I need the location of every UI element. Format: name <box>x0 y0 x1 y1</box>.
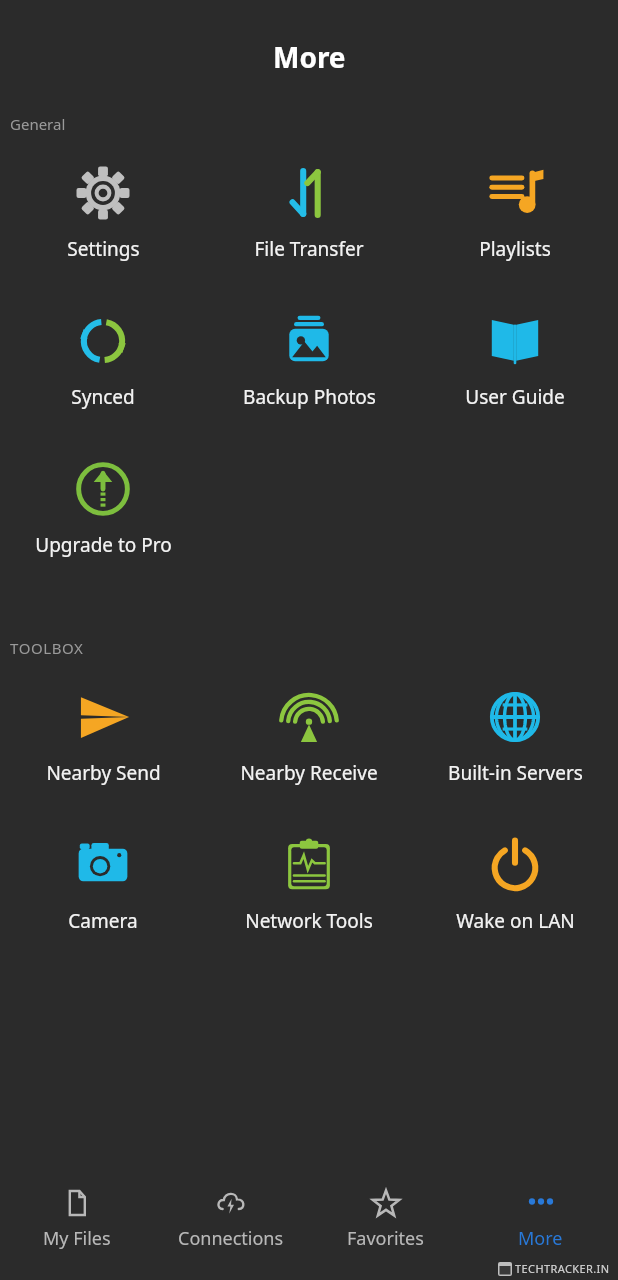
button[interactable]: Network Tools <box>206 828 412 976</box>
staticText: Settings <box>67 236 140 262</box>
button[interactable]: User Guide <box>412 304 618 452</box>
staticText: User Guide <box>465 384 565 410</box>
button[interactable]: More <box>463 1170 618 1280</box>
staticText: Favorites <box>347 1226 424 1251</box>
staticText: Nearby Send <box>46 760 161 786</box>
button[interactable]: Wake on LAN <box>412 828 618 976</box>
staticText: General <box>10 114 66 134</box>
button[interactable]: Backup Photos <box>206 304 412 452</box>
button[interactable]: Synced <box>0 304 206 452</box>
staticText: TECHTRACKER.IN <box>515 1261 610 1276</box>
button[interactable]: Camera <box>0 828 206 976</box>
staticText: More <box>518 1226 563 1251</box>
staticText: TOOLBOX <box>10 638 84 658</box>
staticText: More <box>273 38 346 76</box>
button[interactable]: Upgrade to Pro <box>0 452 206 600</box>
staticText: My Files <box>43 1226 111 1251</box>
button[interactable]: Playlists <box>412 156 618 304</box>
button[interactable]: Nearby Send <box>0 680 206 828</box>
staticText: Built-in Servers <box>448 760 583 786</box>
button[interactable]: Connections <box>154 1170 308 1280</box>
staticText: Camera <box>68 908 138 934</box>
button[interactable]: My Files <box>0 1170 154 1280</box>
staticText: Connections <box>178 1226 284 1251</box>
staticText: Playlists <box>479 236 551 262</box>
staticText: Synced <box>71 384 135 410</box>
staticText: Upgrade to Pro <box>35 532 172 558</box>
button[interactable]: Built-in Servers <box>412 680 618 828</box>
button[interactable]: File Transfer <box>206 156 412 304</box>
staticText: File Transfer <box>254 236 364 262</box>
staticText: Nearby Receive <box>240 760 378 786</box>
staticText: Network Tools <box>245 908 373 934</box>
staticText: Backup Photos <box>243 384 376 410</box>
button[interactable]: Settings <box>0 156 206 304</box>
staticText: Wake on LAN <box>456 908 575 934</box>
button[interactable]: Nearby Receive <box>206 680 412 828</box>
button[interactable]: Favorites <box>308 1170 463 1280</box>
